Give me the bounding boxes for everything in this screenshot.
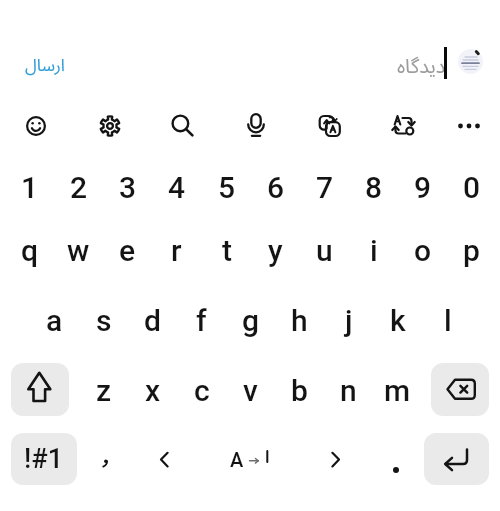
button[interactable]: k [374, 292, 421, 348]
staticText: 2 [70, 170, 88, 205]
button[interactable] [374, 433, 418, 485]
staticText: k [390, 303, 406, 338]
button[interactable] [11, 433, 77, 485]
staticText: a [46, 303, 63, 338]
button[interactable]: 5 [203, 162, 250, 212]
button[interactable] [180, 433, 320, 485]
button[interactable]: d [129, 292, 176, 348]
button[interactable] [10, 103, 62, 149]
button[interactable]: 6 [252, 162, 299, 212]
staticText: m [384, 373, 411, 408]
staticText: 7 [316, 170, 334, 205]
staticText: 8 [365, 170, 383, 205]
staticText: v [243, 373, 258, 408]
button[interactable]: ارسال [25, 48, 95, 84]
staticText: u [316, 233, 333, 268]
button[interactable] [443, 103, 495, 149]
button[interactable] [375, 103, 427, 149]
staticText: w [67, 233, 90, 268]
staticText: j [345, 303, 353, 338]
button[interactable]: f [178, 292, 225, 348]
staticText: p [463, 233, 480, 268]
button[interactable] [83, 433, 127, 485]
button[interactable]: j [325, 292, 372, 348]
button[interactable]: m [374, 362, 421, 418]
staticText: 1 [21, 170, 39, 205]
button[interactable]: v [227, 362, 274, 418]
button[interactable]: s [80, 292, 127, 348]
button[interactable]: p [448, 222, 495, 278]
button[interactable]: e [104, 222, 151, 278]
staticText: r [171, 233, 182, 268]
button[interactable]: w [55, 222, 102, 278]
staticText: 6 [267, 170, 285, 205]
button[interactable]: n [325, 362, 372, 418]
button[interactable]: y [252, 222, 299, 278]
button[interactable]: u [301, 222, 348, 278]
button[interactable] [156, 103, 208, 149]
button[interactable]: l [424, 292, 471, 348]
button[interactable]: c [178, 362, 225, 418]
staticText: 0 [463, 170, 481, 205]
staticText: 3 [119, 170, 137, 205]
button[interactable]: x [129, 362, 176, 418]
staticText: e [119, 233, 136, 268]
button[interactable]: q [6, 222, 53, 278]
staticText: d [144, 303, 161, 338]
button[interactable]: 9 [399, 162, 446, 212]
staticText: b [291, 373, 308, 408]
button[interactable]: h [276, 292, 323, 348]
button[interactable]: A [222, 444, 252, 474]
staticText: t [222, 233, 232, 268]
staticText: f [196, 303, 207, 338]
staticText: q [21, 233, 39, 268]
button[interactable] [84, 103, 136, 149]
staticText: i [370, 233, 378, 268]
staticText: g [242, 303, 260, 338]
button[interactable]: a [31, 292, 78, 348]
staticText: !#1 [24, 443, 64, 475]
staticText: y [268, 233, 283, 268]
staticText: دیدگاه [397, 46, 446, 84]
button[interactable] [11, 363, 69, 416]
staticText: z [96, 373, 112, 408]
button[interactable] [230, 103, 282, 149]
staticText: A [230, 448, 244, 471]
button[interactable] [424, 433, 489, 485]
staticText: 5 [218, 170, 236, 205]
button[interactable] [431, 363, 489, 416]
staticText: 4 [168, 170, 186, 205]
staticText: ارسال [25, 48, 65, 84]
staticText: 9 [414, 170, 432, 205]
button[interactable]: 0 [448, 162, 495, 212]
button[interactable]: t [203, 222, 250, 278]
button[interactable]: z [80, 362, 127, 418]
button[interactable]: 2 [55, 162, 102, 212]
button[interactable]: !#1 [11, 433, 77, 485]
button[interactable]: 7 [301, 162, 348, 212]
button[interactable]: g [227, 292, 274, 348]
staticText: l [444, 303, 452, 338]
staticText: o [414, 233, 432, 268]
button[interactable]: 3 [104, 162, 151, 212]
button[interactable]: 4 [153, 162, 200, 212]
button[interactable]: 1 [6, 162, 53, 212]
button[interactable]: o [399, 222, 446, 278]
staticText: n [340, 373, 357, 408]
staticText: h [291, 303, 308, 338]
button[interactable]: i [350, 222, 397, 278]
staticText: s [96, 303, 112, 338]
staticText: x [145, 373, 161, 408]
button[interactable]: b [276, 362, 323, 418]
button[interactable]: r [153, 222, 200, 278]
button[interactable] [302, 103, 354, 149]
staticText: c [194, 373, 210, 408]
button[interactable]: 8 [350, 162, 397, 212]
